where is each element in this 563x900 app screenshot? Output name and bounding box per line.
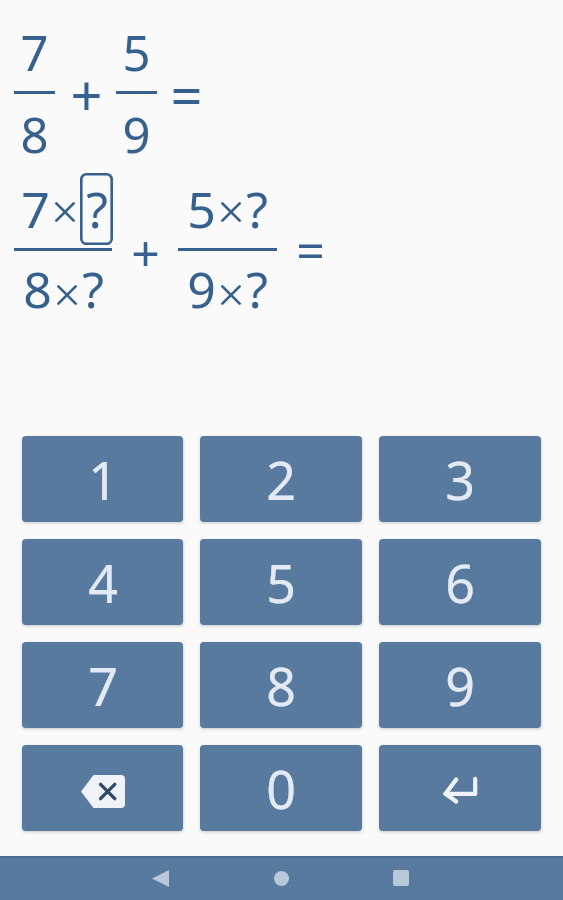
button[interactable]: 2 <box>200 436 362 522</box>
staticText: 5 <box>187 175 216 231</box>
staticText: = <box>170 56 203 132</box>
button[interactable]: Enter <box>379 745 541 831</box>
button[interactable]: Back <box>140 856 180 900</box>
staticText: 9 <box>122 101 151 168</box>
button[interactable]: Home <box>261 856 301 900</box>
staticText: 7 <box>20 19 49 86</box>
staticText: 2 <box>266 444 296 515</box>
staticText: 9 <box>445 650 475 721</box>
staticText: 5 <box>122 19 151 86</box>
staticText: = <box>296 216 325 284</box>
button[interactable]: 1 <box>22 436 183 522</box>
staticText: ? <box>82 255 104 313</box>
button[interactable]: 6 <box>379 539 541 625</box>
staticText: ? <box>246 255 268 313</box>
button[interactable]: 0 <box>200 745 362 831</box>
button[interactable]: Backspace <box>22 745 183 831</box>
staticText: 9 <box>187 255 216 313</box>
staticText: 8 <box>20 101 49 168</box>
staticText: ? <box>86 175 108 231</box>
button[interactable]: 3 <box>379 436 541 522</box>
button[interactable]: 9 <box>379 642 541 728</box>
staticText: ? <box>246 175 268 231</box>
staticText: 3 <box>445 444 475 515</box>
staticText: 0 <box>266 753 296 824</box>
button[interactable]: 4 <box>22 539 183 625</box>
staticText: 4 <box>88 547 118 618</box>
button[interactable]: Recent apps <box>381 856 421 900</box>
button[interactable]: 7 <box>22 642 183 728</box>
staticText: 8 <box>266 650 296 721</box>
staticText: + <box>131 218 160 286</box>
button[interactable]: 5 <box>200 539 362 625</box>
button[interactable]: 8 <box>200 642 362 728</box>
staticText: 8 <box>23 255 52 313</box>
staticText: 6 <box>445 547 475 618</box>
staticText: 7 <box>88 650 118 721</box>
staticText: 5 <box>266 547 296 618</box>
staticText: 7 <box>21 175 50 231</box>
staticText: 1 <box>88 444 118 515</box>
staticText: + <box>70 56 103 132</box>
